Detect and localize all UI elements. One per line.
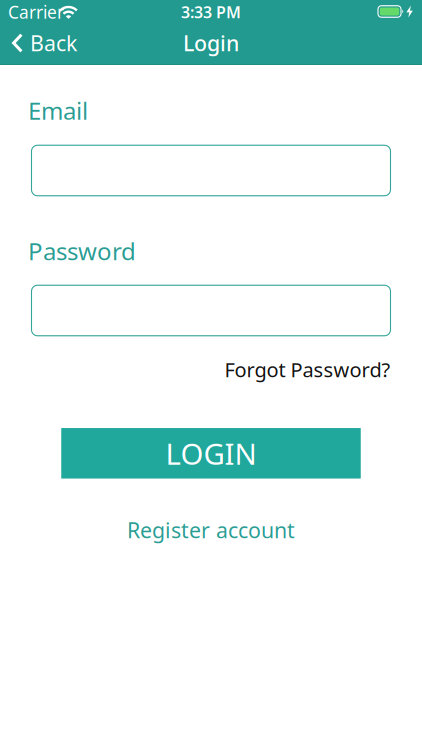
button[interactable]: Password	[31, 285, 390, 336]
staticText: Login	[183, 29, 239, 57]
button[interactable]: Back	[12, 29, 77, 57]
staticText: Carrier	[8, 0, 64, 23]
staticText: Forgot Password?	[224, 356, 390, 383]
button[interactable]: LOGIN	[61, 428, 361, 479]
staticText: Email	[28, 95, 88, 126]
staticText: Password	[28, 235, 136, 267]
button[interactable]: Forgot Password?	[224, 356, 390, 383]
button[interactable]: Register account	[127, 516, 295, 544]
staticText: Register account	[127, 516, 295, 544]
staticText: LOGIN	[165, 434, 256, 473]
staticText: Back	[30, 29, 77, 57]
button[interactable]: Email	[31, 145, 390, 196]
staticText: 3:33 PM	[181, 1, 241, 23]
